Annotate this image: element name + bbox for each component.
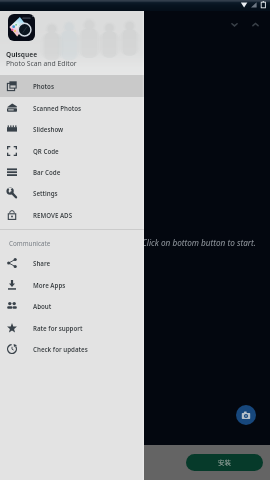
- button[interactable]: Expand: [249, 18, 262, 31]
- staticText: Share: [33, 259, 51, 267]
- staticText: Quisquee: [6, 50, 38, 59]
- staticText: About: [33, 302, 52, 310]
- button[interactable]: Photos: [0, 75, 144, 97]
- staticText: Photos: [33, 82, 54, 90]
- staticText: 安装: [218, 459, 231, 467]
- staticText: QR Code: [33, 147, 59, 155]
- button[interactable]: Scanned Photos: [0, 97, 144, 119]
- button[interactable]: Collapse: [228, 18, 241, 31]
- staticText: Settings: [33, 189, 58, 197]
- button[interactable]: REMOVE ADS: [0, 204, 144, 226]
- staticText: Rate for support: [33, 324, 83, 332]
- button[interactable]: Rate for support: [0, 317, 144, 339]
- button[interactable]: Share: [0, 252, 144, 274]
- button[interactable]: Slideshow: [0, 118, 144, 140]
- button[interactable]: More Apps: [0, 274, 144, 296]
- button[interactable]: 安装: [186, 454, 263, 471]
- button[interactable]: Bar Code: [0, 161, 144, 183]
- button[interactable]: Take photo: [236, 405, 256, 425]
- staticText: Slideshow: [33, 125, 64, 133]
- staticText: Click on bottom button to start.: [142, 237, 256, 248]
- staticText: Photo Scan and Editor: [6, 59, 77, 68]
- staticText: Scanned Photos: [33, 104, 82, 112]
- staticText: Bar Code: [33, 168, 61, 176]
- button[interactable]: About: [0, 295, 144, 317]
- staticText: Communicate: [9, 239, 51, 248]
- button[interactable]: Settings: [0, 182, 144, 204]
- staticText: REMOVE ADS: [33, 211, 73, 219]
- staticText: Check for updates: [33, 345, 88, 353]
- button[interactable]: QR Code: [0, 140, 144, 162]
- staticText: More Apps: [33, 281, 66, 289]
- button[interactable]: Check for updates: [0, 338, 144, 360]
